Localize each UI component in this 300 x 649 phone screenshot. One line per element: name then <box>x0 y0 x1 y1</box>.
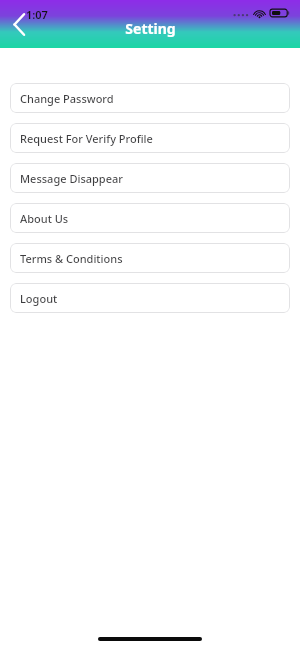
staticText: Request For Verify Profile <box>20 131 153 146</box>
button[interactable]: Logout <box>10 283 290 313</box>
button[interactable]: Terms & Conditions <box>10 243 290 273</box>
staticText: 1:07 <box>26 7 48 22</box>
staticText: Terms & Conditions <box>20 251 123 266</box>
staticText: Change Password <box>20 91 114 106</box>
button[interactable]: Back <box>6 9 32 39</box>
button[interactable]: Request For Verify Profile <box>10 123 290 153</box>
button[interactable]: About Us <box>10 203 290 233</box>
staticText: Message Disappear <box>20 171 123 186</box>
button[interactable]: Change Password <box>10 83 290 113</box>
staticText: Setting <box>125 19 176 38</box>
button[interactable]: Message Disappear <box>10 163 290 193</box>
staticText: Logout <box>20 291 58 306</box>
staticText: About Us <box>20 211 69 226</box>
